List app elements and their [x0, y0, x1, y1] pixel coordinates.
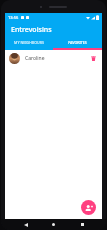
button[interactable]: Caroline: [5, 50, 102, 67]
button[interactable]: MY NEIGHBOURS: [5, 37, 53, 48]
button[interactable]: Delete: [89, 54, 98, 63]
staticText: Entrevoisins: [11, 25, 52, 35]
staticText: FAVORITES: [68, 40, 87, 45]
staticText: MY NEIGHBOURS: [14, 40, 44, 45]
button[interactable]: FAVORITES: [53, 37, 102, 48]
button[interactable]: Home: [49, 220, 58, 229]
button[interactable]: Add neighbour: [81, 200, 96, 215]
button[interactable]: Back: [21, 220, 30, 229]
staticText: Caroline: [25, 55, 45, 62]
staticText: 13:56: [8, 15, 19, 20]
button[interactable]: Recent apps: [78, 220, 87, 229]
